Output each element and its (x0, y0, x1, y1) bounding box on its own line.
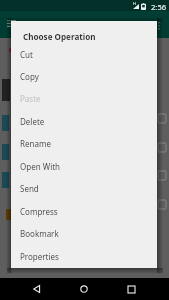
button[interactable]: Send (11, 177, 157, 199)
button[interactable]: Copy (11, 65, 157, 87)
staticText: Open With (20, 161, 61, 172)
button[interactable]: Navigation menu (5, 17, 17, 29)
staticText: Copy (20, 71, 39, 82)
staticText: Choose Operation (23, 31, 96, 42)
button[interactable]: Select item (157, 142, 166, 152)
button[interactable]: Properties (11, 245, 157, 267)
staticText: Properties (20, 251, 59, 262)
button[interactable]: Rename (11, 132, 157, 154)
button[interactable]: Recent apps (120, 278, 142, 300)
staticText: Cut (20, 49, 33, 60)
button[interactable]: Cut (11, 43, 157, 65)
button[interactable]: Home (73, 278, 95, 300)
button[interactable]: Select item (157, 199, 166, 209)
staticText: Bookmark (20, 228, 59, 239)
button[interactable]: Compress (11, 200, 157, 222)
button[interactable]: Bookmark (11, 222, 157, 244)
button[interactable]: Select item (157, 113, 166, 123)
button[interactable]: Back (26, 278, 48, 300)
button[interactable]: Paste (11, 87, 157, 109)
staticText: Rename (20, 138, 51, 149)
button[interactable]: More options (153, 19, 165, 31)
staticText: Delete (20, 116, 45, 127)
staticText: 2:56 (151, 2, 167, 12)
button[interactable]: Delete (11, 110, 157, 132)
staticText: H (133, 1, 136, 6)
button[interactable]: Select item (157, 170, 166, 180)
button[interactable]: Open With (11, 155, 157, 177)
staticText: Compress (20, 206, 58, 217)
staticText: Paste (20, 93, 41, 104)
staticText: Send (20, 183, 39, 194)
